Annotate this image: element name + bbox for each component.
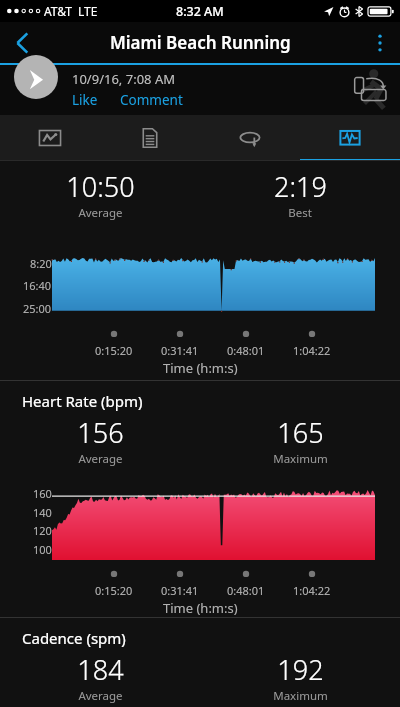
button[interactable]: Comment [120,91,183,109]
staticText: 10/9/16, 7:08 AM [72,70,175,88]
staticText: 100 [33,542,52,557]
staticText: Best [288,205,312,221]
staticText: Cadence (spm) [22,628,126,648]
staticText: 25:00 [23,301,52,316]
staticText: Maximum [273,451,328,467]
button[interactable]: Back [0,22,44,63]
staticText: Average [78,205,123,221]
button[interactable]: Rotate device [350,68,392,110]
staticText: 0:15:20 [95,343,133,358]
button[interactable]: Details [100,115,200,161]
staticText: Comment [120,91,183,109]
staticText: 1:04:22 [293,343,331,358]
staticText: 120 [33,523,52,538]
staticText: 0:48:01 [227,343,265,358]
staticText: 184 [77,651,124,688]
staticText: Heart Rate (bpm) [22,391,143,411]
staticText: 0:48:01 [227,583,265,598]
staticText: Like [72,91,98,109]
button[interactable]: Laps [200,115,300,161]
staticText: 0:15:20 [95,583,133,598]
button[interactable]: Map [0,115,100,161]
button[interactable]: Like [72,91,98,109]
button[interactable]: More options [360,22,400,63]
staticText: 140 [33,505,52,520]
staticText: 2:19 [274,168,327,205]
staticText: 192 [277,651,324,688]
staticText: 8:32 AM [176,3,224,20]
staticText: Time (h:m:s) [163,359,238,377]
staticText: 0:31:41 [161,583,199,598]
staticText: 10:50 [66,168,135,205]
staticText: 8:20 [30,256,52,271]
button[interactable]: Charts [300,115,400,161]
staticText: 156 [77,414,124,451]
staticText: 1:04:22 [293,583,331,598]
staticText: 160 [33,486,52,501]
staticText: Miami Beach Running [110,31,291,54]
staticText: 16:40 [23,278,52,293]
staticText: 165 [277,414,324,451]
staticText: Average [78,688,123,704]
staticText: AT&T [44,3,72,19]
button[interactable]: Profile [14,55,58,99]
staticText: Maximum [273,688,328,704]
staticText: Time (h:m:s) [163,599,238,617]
staticText: LTE [78,3,98,19]
staticText: Average [78,451,123,467]
staticText: 0:31:41 [161,343,199,358]
